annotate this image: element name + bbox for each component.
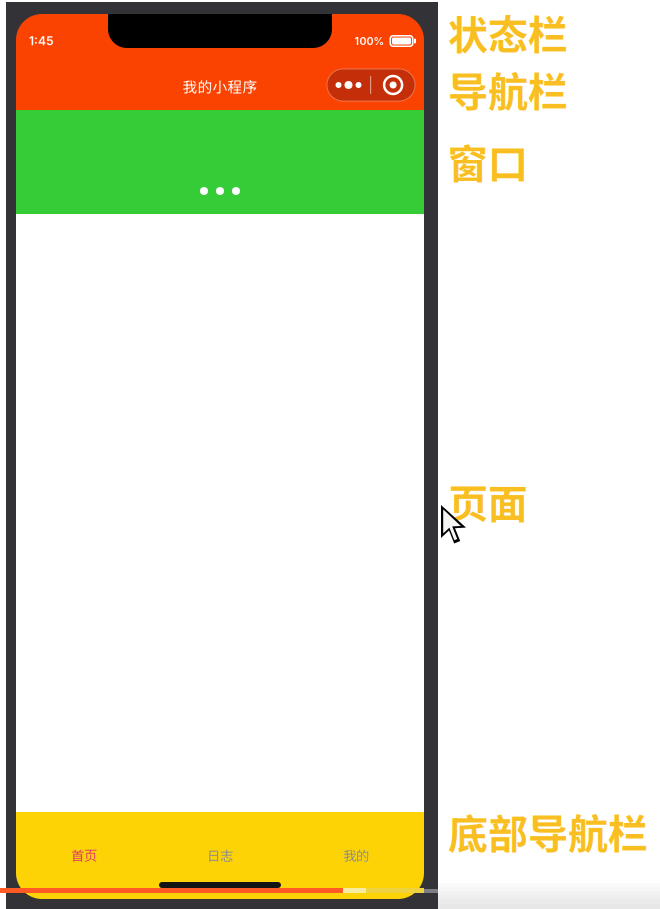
button[interactable]: 日志 bbox=[152, 844, 288, 866]
staticText: 日志 bbox=[207, 845, 233, 865]
button[interactable]: 首页 bbox=[16, 844, 152, 866]
staticText: 导航栏 bbox=[448, 60, 568, 118]
staticText: 首页 bbox=[71, 845, 97, 865]
staticText: 底部导航栏 bbox=[448, 802, 648, 860]
staticText: 我的 bbox=[343, 845, 369, 865]
button[interactable]: More options and Close mini program bbox=[327, 69, 415, 101]
staticText: 1:45 bbox=[29, 34, 54, 48]
button[interactable]: 我的 bbox=[288, 844, 424, 866]
staticText: 窗口 bbox=[448, 132, 528, 190]
staticText: 状态栏 bbox=[448, 3, 568, 61]
staticText: 我的小程序 bbox=[182, 75, 257, 97]
staticText: 100% bbox=[354, 34, 384, 47]
staticText: 页面 bbox=[448, 472, 528, 530]
